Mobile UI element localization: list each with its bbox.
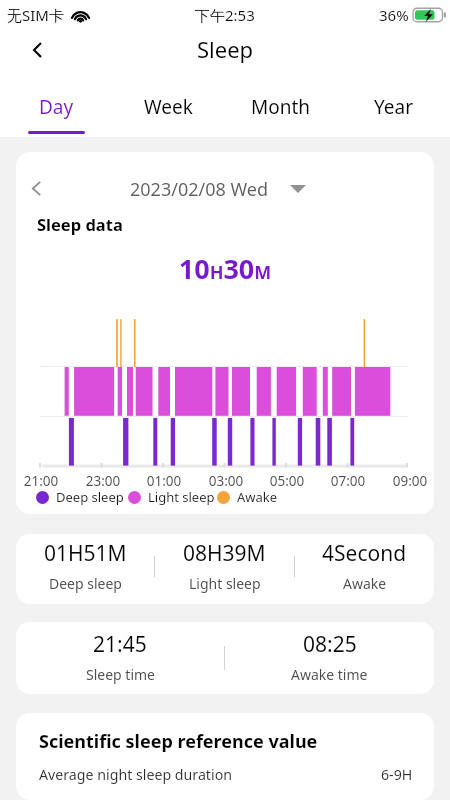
staticText: Deep sleep — [49, 574, 122, 593]
staticText: 01H51M — [44, 539, 127, 568]
staticText: 下午2:53 — [195, 5, 255, 25]
staticText: Month — [251, 94, 311, 120]
staticText: Awake — [343, 574, 387, 593]
staticText: Sleep time — [86, 665, 155, 684]
button[interactable]: Month — [224, 80, 337, 137]
button[interactable]: Back — [16, 32, 58, 68]
staticText: 01:00 — [139, 472, 189, 490]
staticText: 4Second — [322, 539, 407, 568]
button[interactable]: 21:45 — [16, 622, 224, 694]
staticText: Scientific sleep reference value — [39, 729, 318, 754]
staticText: 36% — [379, 5, 409, 25]
staticText: Sleep — [197, 34, 254, 64]
staticText: 无SIM卡 — [7, 5, 64, 25]
button[interactable]: 08:25 — [225, 622, 434, 694]
staticText: Sleep data — [37, 213, 123, 235]
staticText: Light sleep — [148, 488, 215, 506]
staticText: 21:45 — [93, 630, 147, 659]
staticText: 21:00 — [16, 472, 66, 490]
button[interactable]: Day — [0, 80, 112, 137]
staticText: 03:00 — [201, 472, 251, 490]
staticText: 07:00 — [323, 472, 373, 490]
staticText: Awake time — [291, 665, 368, 684]
button[interactable]: Previous day — [18, 171, 54, 205]
staticText: 23:00 — [78, 472, 128, 490]
button[interactable]: 01H51M — [16, 534, 154, 604]
staticText: Awake — [237, 488, 278, 506]
button[interactable]: 4Second — [295, 534, 434, 604]
staticText: 08:25 — [303, 630, 357, 659]
staticText: Week — [144, 94, 193, 120]
button[interactable]: Week — [112, 80, 224, 137]
staticText: Light sleep — [189, 574, 261, 593]
staticText: Day — [39, 94, 74, 120]
staticText: Deep sleep — [56, 488, 124, 506]
staticText: 2023/02/08 Wed — [130, 177, 269, 202]
staticText: 6-9H — [381, 765, 413, 784]
button[interactable]: Year — [337, 80, 450, 137]
staticText: 08H39M — [183, 539, 266, 568]
staticText: 05:00 — [262, 472, 312, 490]
staticText: Year — [374, 94, 414, 120]
button[interactable]: 08H39M — [155, 534, 294, 604]
staticText: 09:00 — [385, 472, 434, 490]
staticText: 10H30M — [16, 250, 434, 287]
staticText: Average night sleep duration — [39, 765, 232, 784]
